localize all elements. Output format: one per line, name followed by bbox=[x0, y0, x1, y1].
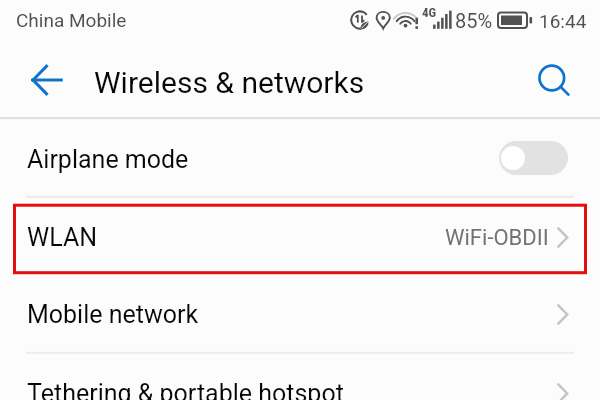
button[interactable]: Search bbox=[528, 54, 576, 102]
button[interactable]: Back bbox=[23, 56, 71, 104]
staticText: Mobile network bbox=[27, 300, 199, 329]
staticText: Airplane mode bbox=[27, 145, 189, 174]
staticText: China Mobile bbox=[16, 9, 127, 31]
button[interactable]: Tethering & portable hotspot bbox=[0, 354, 600, 400]
staticText: Wireless & networks bbox=[94, 65, 365, 100]
button[interactable]: Mobile network bbox=[0, 275, 600, 353]
staticText: Tethering & portable hotspot bbox=[27, 379, 344, 400]
staticText: 16:44 bbox=[539, 10, 587, 32]
staticText: WiFi-OBDII bbox=[445, 225, 549, 251]
staticText: 4G bbox=[422, 5, 437, 20]
staticText: 85% bbox=[455, 9, 493, 32]
button[interactable]: Airplane mode bbox=[0, 120, 600, 198]
staticText: WLAN bbox=[27, 223, 98, 252]
button[interactable]: WLAN bbox=[0, 198, 600, 276]
